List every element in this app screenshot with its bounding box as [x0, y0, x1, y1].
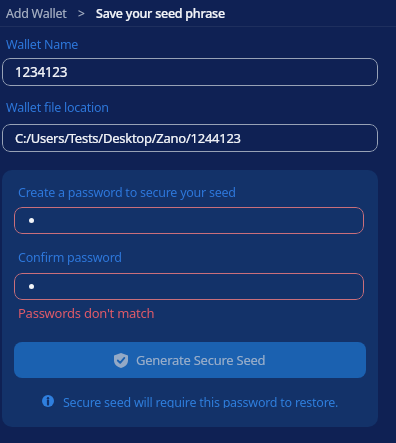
staticText: Secure seed will require this password t… [63, 394, 339, 408]
staticText: Confirm password [18, 249, 122, 266]
staticText: Wallet Name [6, 36, 79, 53]
staticText: Wallet file location [6, 99, 109, 116]
button[interactable]: C:/Users/Tests/Desktop/Zano/1244123 [2, 124, 378, 152]
staticText: Save your seed phrase [96, 5, 225, 22]
staticText: Create a password to secure your seed [18, 184, 236, 201]
staticText: > [78, 5, 85, 21]
button[interactable]: Add Wallet [6, 5, 67, 22]
staticText: C:/Users/Tests/Desktop/Zano/1244123 [15, 129, 241, 147]
staticText: Passwords don't match [18, 304, 155, 322]
staticText: Generate Secure Seed [136, 351, 266, 369]
staticText: 1234123 [15, 63, 68, 81]
button[interactable] [14, 273, 364, 300]
button[interactable] [14, 207, 364, 234]
staticText: Add Wallet [6, 5, 67, 22]
button[interactable]: Generate Secure Seed [14, 342, 366, 378]
button[interactable]: 1234123 [2, 58, 378, 86]
